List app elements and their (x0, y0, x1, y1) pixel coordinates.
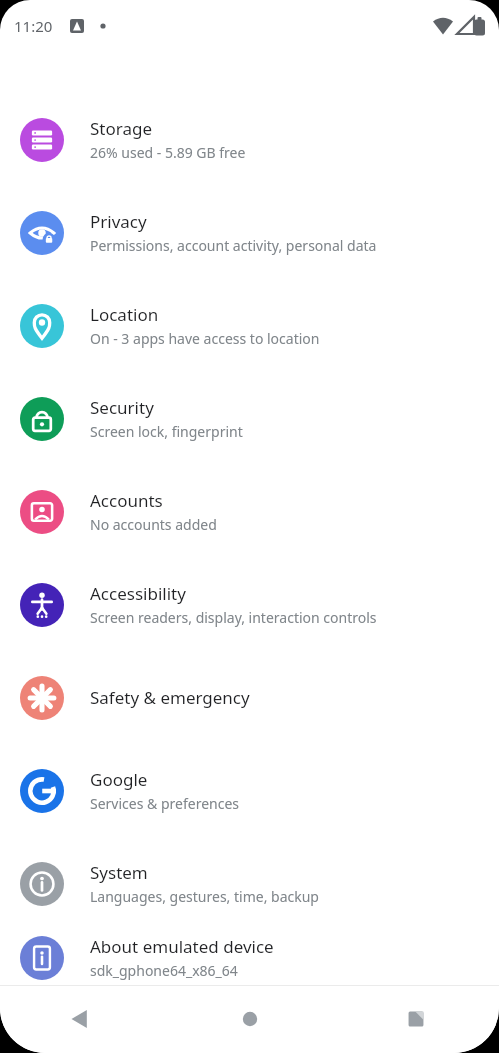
staticText: Storage (90, 117, 153, 140)
staticText: Screen readers, display, interaction con… (90, 608, 377, 627)
button[interactable]: Safety & emergency (0, 651, 499, 744)
staticText: 11:20 (14, 16, 53, 36)
button[interactable]: Accessibility (0, 558, 499, 651)
button[interactable]: Storage (0, 93, 499, 186)
button[interactable]: Google (0, 744, 499, 837)
staticText: Accounts (90, 489, 163, 512)
staticText: Location (90, 303, 159, 326)
staticText: Services & preferences (90, 794, 240, 813)
staticText: About emulated device (90, 935, 274, 958)
button[interactable]: Recent apps (333, 985, 499, 1053)
staticText: Privacy (90, 210, 147, 233)
button[interactable]: Back (0, 985, 166, 1053)
staticText: Languages, gestures, time, backup (90, 887, 319, 906)
button[interactable]: Location (0, 279, 499, 372)
staticText: Permissions, account activity, personal … (90, 236, 377, 255)
staticText: sdk_gphone64_x86_64 (90, 961, 238, 980)
button[interactable]: System (0, 837, 499, 930)
button[interactable]: Home (167, 985, 333, 1053)
button[interactable]: Privacy (0, 186, 499, 279)
staticText: Accessibility (90, 582, 186, 605)
staticText: System (90, 861, 148, 884)
staticText: Safety & emergency (90, 686, 250, 709)
button[interactable]: Security (0, 372, 499, 465)
staticText: Security (90, 396, 154, 419)
staticText: Screen lock, fingerprint (90, 422, 243, 441)
staticText: 26% used - 5.89 GB free (90, 143, 246, 162)
staticText: Google (90, 768, 148, 791)
staticText: On - 3 apps have access to location (90, 329, 320, 348)
staticText: No accounts added (90, 515, 217, 534)
button[interactable]: About emulated device (0, 930, 499, 985)
button[interactable]: Accounts (0, 465, 499, 558)
